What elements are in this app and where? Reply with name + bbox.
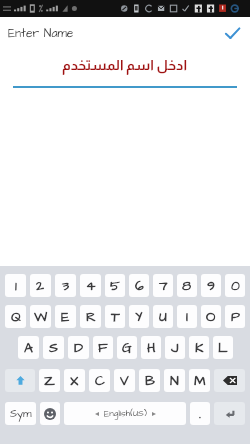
button[interactable]: N [164, 369, 185, 392]
staticText: . [199, 404, 201, 423]
staticText: 0 [231, 276, 240, 295]
staticText: P [231, 307, 240, 326]
button[interactable]: 9 [201, 274, 221, 297]
button[interactable]: T [105, 305, 125, 328]
button[interactable]: D [68, 336, 89, 359]
button[interactable]: X [64, 369, 85, 392]
staticText: D [74, 338, 84, 357]
button[interactable]: H [141, 336, 161, 359]
button[interactable]: J [165, 336, 185, 359]
button[interactable]: Confirm name [220, 21, 244, 45]
staticText: B [145, 371, 155, 390]
staticText: E [61, 307, 70, 326]
button[interactable]: F [93, 336, 113, 359]
button[interactable]: U [153, 305, 173, 328]
staticText: H [147, 338, 156, 357]
button[interactable]: W [30, 305, 51, 328]
button[interactable]: 4 [80, 274, 101, 297]
button[interactable]: Shift [5, 369, 35, 392]
button[interactable]: 6 [129, 274, 149, 297]
button[interactable]: A [18, 336, 39, 359]
staticText: 9 [207, 276, 215, 295]
button[interactable]: Backspace [214, 369, 245, 392]
button[interactable]: 2 [30, 274, 51, 297]
button[interactable]: Q [5, 305, 26, 328]
button[interactable]: R [80, 305, 101, 328]
button[interactable]: O [201, 305, 221, 328]
staticText: W [34, 307, 48, 326]
staticText: Enter Name [8, 25, 74, 42]
button[interactable]: 0 [225, 274, 245, 297]
button[interactable]: 3 [55, 274, 76, 297]
button[interactable]: 8 [177, 274, 197, 297]
staticText: U [159, 307, 167, 326]
staticText: C [95, 371, 105, 390]
staticText: Q [11, 307, 21, 326]
button[interactable]: Enter [214, 402, 245, 425]
staticText: L [218, 338, 228, 357]
button[interactable]: K [189, 336, 209, 359]
staticText: English(US) [104, 407, 147, 420]
staticText: 7 [159, 276, 168, 295]
staticText: K [195, 338, 204, 357]
staticText: N [170, 371, 179, 390]
staticText: S [49, 338, 58, 357]
button[interactable]: Z [39, 369, 60, 392]
button[interactable]: S [43, 336, 64, 359]
staticText: 1 [15, 276, 17, 295]
button[interactable]: 5 [105, 274, 125, 297]
staticText: O [206, 307, 216, 326]
button[interactable]: P [225, 305, 245, 328]
staticText: 4 [86, 276, 96, 295]
staticText: I [186, 307, 189, 326]
staticText: T [111, 307, 120, 326]
staticText: Y [135, 307, 143, 326]
staticText: Z [44, 371, 55, 390]
staticText: 2 [36, 276, 45, 295]
staticText: 6 [135, 276, 144, 295]
staticText: M [194, 371, 206, 390]
staticText: V [120, 371, 129, 390]
button[interactable]: 1 [5, 274, 26, 297]
staticText: A [24, 338, 33, 357]
button[interactable]: G [117, 336, 137, 359]
button[interactable]: B [139, 369, 160, 392]
staticText: 5 [110, 276, 120, 295]
staticText: Sym [10, 406, 32, 421]
staticText: 3 [62, 276, 70, 295]
staticText: 8 [182, 276, 192, 295]
button[interactable]: . [190, 402, 210, 425]
button[interactable]: 7 [153, 274, 173, 297]
staticText: J [171, 338, 179, 357]
staticText: ادخل اسم المستخدم [62, 57, 188, 73]
button[interactable]: Sym [5, 402, 36, 425]
button[interactable]: E [55, 305, 76, 328]
staticText: F [98, 338, 108, 357]
staticText: R [86, 307, 96, 326]
button[interactable]: Space [64, 402, 186, 425]
button[interactable]: Y [129, 305, 149, 328]
button[interactable]: Emoji [40, 402, 60, 425]
button[interactable]: V [114, 369, 135, 392]
staticText: G [122, 338, 132, 357]
staticText: X [70, 371, 79, 390]
button[interactable]: C [89, 369, 110, 392]
button[interactable]: M [189, 369, 210, 392]
button[interactable]: I [177, 305, 197, 328]
button[interactable]: L [213, 336, 233, 359]
